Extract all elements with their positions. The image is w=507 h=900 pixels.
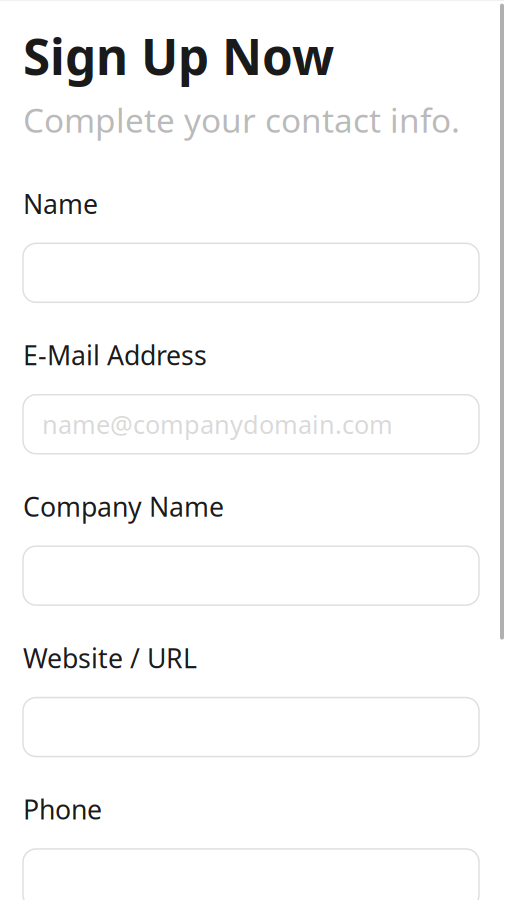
staticText: Name <box>23 186 98 221</box>
staticText: name@companydomain.com <box>42 407 393 441</box>
button[interactable] <box>23 243 479 302</box>
staticText: Company Name <box>23 489 224 524</box>
button[interactable] <box>23 546 479 605</box>
staticText: E-Mail Address <box>23 337 207 373</box>
staticText: Website / URL <box>23 640 197 675</box>
staticText: Complete your contact info. <box>23 98 460 142</box>
staticText: Phone <box>23 792 102 827</box>
button[interactable] <box>23 849 479 900</box>
button[interactable] <box>23 698 479 757</box>
button[interactable]: name@companydomain.com <box>23 395 479 454</box>
staticText: Sign Up Now <box>23 23 334 89</box>
